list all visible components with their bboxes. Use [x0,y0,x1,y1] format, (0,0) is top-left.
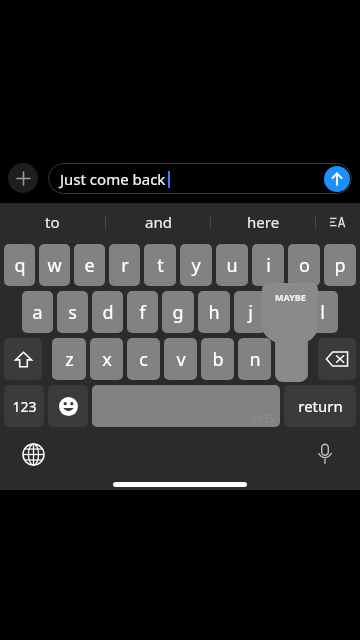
button[interactable]: Emoji [48,385,88,427]
button[interactable]: q [4,244,35,286]
button[interactable]: f [127,291,158,333]
button[interactable]: Shift [4,338,42,380]
staticText: e [84,253,95,278]
button[interactable]: r [109,244,140,286]
staticText: here [247,212,280,232]
staticText: s [68,300,77,325]
staticText: o [299,253,310,278]
button[interactable]: Voice input [310,439,340,469]
button[interactable]: n [238,338,271,380]
button[interactable]: a [22,291,53,333]
staticText: x [102,347,112,372]
staticText: y [191,253,201,278]
staticText: u [226,253,238,278]
staticText: b [212,347,224,372]
staticText: w [47,253,62,278]
staticText: j [248,300,253,325]
button[interactable]: s [57,291,88,333]
staticText: q [14,253,26,278]
button[interactable]: 123 [4,385,44,427]
button[interactable]: Send [324,166,350,192]
staticText: return [298,396,343,416]
staticText: k [281,300,291,325]
button[interactable]: h [198,291,230,333]
staticText: h [208,300,220,325]
button[interactable]: Just come back [48,163,352,194]
staticText: t [157,253,164,278]
staticText: Just come back [60,169,166,189]
button[interactable]: d [92,291,123,333]
staticText: l [320,300,325,325]
button[interactable]: m [275,338,308,380]
button[interactable]: x [90,338,123,380]
staticText: to [45,212,60,232]
staticText: r [121,253,129,278]
button[interactable]: Formatting [316,203,360,241]
staticText: n [249,347,261,372]
staticText: a [32,300,43,325]
button[interactable]: e [74,244,105,286]
button[interactable]: Space [92,385,280,427]
staticText: g [172,300,184,325]
button[interactable]: o [288,244,320,286]
button[interactable]: to [0,203,105,241]
staticText: i [266,253,271,278]
button[interactable]: w [39,244,70,286]
button[interactable]: l [306,291,338,333]
button[interactable]: p [324,244,356,286]
staticText: 123 [12,397,37,416]
button[interactable]: i [252,244,284,286]
button[interactable]: z [52,338,86,380]
button[interactable]: return [284,385,356,427]
button[interactable]: j [234,291,266,333]
button[interactable]: k [270,291,302,333]
button[interactable]: b [201,338,234,380]
button[interactable]: u [216,244,248,286]
button[interactable]: g [162,291,194,333]
button[interactable]: and [106,203,210,241]
button[interactable]: y [180,244,212,286]
staticText: d [102,300,114,325]
button[interactable]: Add attachment [8,163,38,193]
button[interactable]: here [211,203,315,241]
button[interactable]: v [164,338,197,380]
staticText: v [176,347,186,372]
button[interactable]: t [144,244,176,286]
staticText: p [334,253,346,278]
staticText: MAYBE [275,291,306,303]
staticText: c [139,347,148,372]
staticText: z [65,347,74,372]
staticText: f [139,300,146,325]
button[interactable]: Backspace [318,338,356,380]
staticText: EN ES [252,413,274,424]
button[interactable]: c [127,338,160,380]
button[interactable]: Change keyboard language [18,439,48,469]
staticText: and [145,212,172,232]
